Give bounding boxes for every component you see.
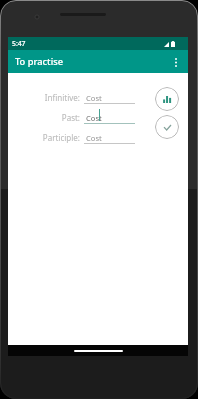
button[interactable]: Statistics [155, 87, 179, 111]
staticText: Infinitive: [44, 92, 80, 103]
staticText: Past: [61, 112, 80, 123]
staticText: To practise [15, 55, 63, 68]
staticText: Cost [86, 133, 102, 143]
button[interactable]: More options [168, 54, 184, 70]
button[interactable]: Check [155, 115, 179, 139]
staticText: Cost [86, 113, 102, 123]
staticText: 5:47 [12, 39, 26, 48]
button[interactable]: Past: [8, 109, 188, 125]
button[interactable]: Infinitive: [8, 89, 188, 105]
button[interactable]: Participle: [8, 129, 188, 145]
staticText: Cost [86, 93, 102, 103]
staticText: Participle: [42, 132, 80, 143]
